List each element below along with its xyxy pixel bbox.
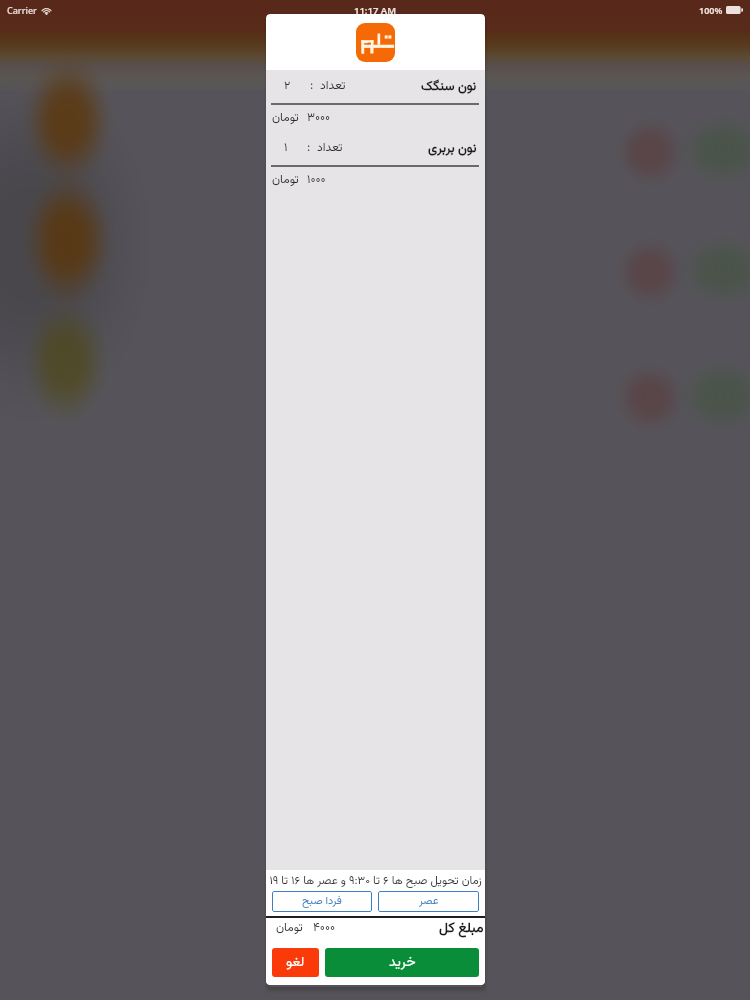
staticText: تومان [272, 109, 299, 128]
staticText: نون بربری [428, 139, 477, 159]
staticText: خرید [389, 952, 416, 974]
staticText: ۴۰۰۰ [313, 919, 336, 938]
staticText: 100% [699, 4, 723, 16]
staticText: مبلغ کل [439, 918, 484, 938]
button[interactable]: لغو [272, 948, 319, 977]
staticText: ۲ [284, 77, 291, 96]
staticText: زمان تحویل صبح ها ۶ تا ۹:۳۰ و عصر ها ۱۶ … [266, 872, 485, 890]
staticText: Carrier [7, 4, 37, 16]
staticText: عصر [419, 893, 439, 910]
staticText: ۳۰۰۰ [307, 109, 331, 128]
button[interactable]: ۲ [266, 70, 485, 132]
staticText: تومان [276, 919, 303, 938]
staticText: تعداد [320, 77, 346, 96]
staticText: : [307, 139, 311, 158]
staticText: لغو [286, 952, 305, 974]
button[interactable]: فردا صبح [272, 891, 372, 912]
button[interactable]: عصر [378, 891, 479, 912]
staticText: تعداد [317, 139, 343, 158]
staticText: : [310, 77, 314, 96]
staticText: تومان [272, 171, 299, 190]
other: Tanoor logo [356, 23, 395, 62]
staticText: نون سنگک [421, 77, 477, 97]
staticText: 11:17 AM [354, 4, 397, 17]
staticText: ۱ [284, 139, 288, 158]
button[interactable]: خرید [325, 948, 479, 977]
staticText: فردا صبح [302, 893, 342, 910]
staticText: ۱۰۰۰ [307, 171, 326, 190]
button[interactable]: ۱ [266, 132, 485, 194]
